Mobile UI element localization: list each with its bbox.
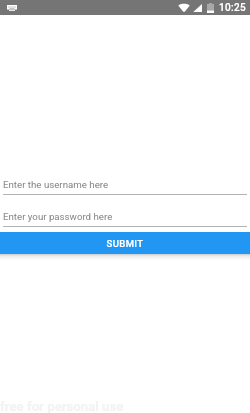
button[interactable]: Enter the username here <box>0 179 250 195</box>
button[interactable]: Enter your password here <box>0 211 250 227</box>
staticText: Enter the username here <box>3 179 109 190</box>
other: Keyboard <box>7 5 17 11</box>
staticText: SUBMIT <box>106 238 144 249</box>
staticText: 10:25 <box>219 2 246 14</box>
button[interactable]: SUBMIT <box>0 232 250 254</box>
staticText: Enter your password here <box>3 211 113 222</box>
staticText: free for personal use <box>0 399 124 413</box>
